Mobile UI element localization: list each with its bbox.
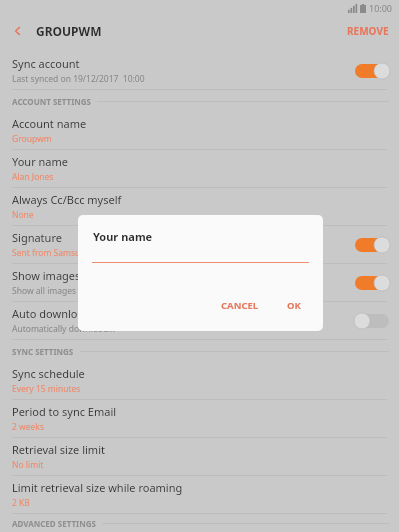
staticText: ADVANCED SETTINGS — [12, 518, 96, 529]
button[interactable]: Toggle — [355, 312, 389, 330]
staticText: Your name — [12, 154, 68, 169]
staticText: Every 15 minutes — [12, 383, 81, 395]
staticText: 10:00 — [369, 2, 393, 14]
staticText: Your name — [93, 229, 153, 244]
staticText: Auto download attachments — [12, 306, 159, 321]
staticText: Sync schedule — [12, 366, 85, 381]
staticText: Sent from Samsung Tablet — [12, 247, 118, 259]
button[interactable]: REMOVE — [337, 18, 399, 44]
button[interactable]: Period to sync Email — [0, 400, 399, 438]
staticText: ACCOUNT SETTINGS — [12, 96, 91, 107]
button[interactable]: OK — [279, 294, 309, 317]
staticText: Show all images in emails — [12, 285, 114, 297]
staticText: CANCEL — [221, 299, 259, 312]
staticText: Last synced on 19/12/2017 10:00 — [12, 73, 145, 85]
button[interactable]: Toggle — [355, 62, 389, 80]
button[interactable]: CANCEL — [213, 294, 267, 317]
button[interactable]: Your name — [0, 150, 399, 188]
button[interactable]: Auto download attachments — [0, 302, 399, 340]
staticText: OK — [287, 299, 301, 312]
staticText: SYNC SETTINGS — [12, 346, 74, 357]
staticText: Show images — [12, 268, 81, 283]
staticText: Period to sync Email — [12, 404, 117, 419]
staticText: Limit retrieval size while roaming — [12, 480, 183, 495]
staticText: Groupwm — [12, 133, 52, 145]
button[interactable]: Limit retrieval size while roaming — [0, 476, 399, 514]
staticText: Sync account — [12, 56, 80, 71]
button[interactable]: Account name — [0, 112, 399, 150]
staticText: Retrieval size limit — [12, 442, 105, 457]
button[interactable]: Sync account — [0, 52, 399, 90]
button[interactable]: Show images — [0, 264, 399, 302]
button[interactable]: Back — [0, 16, 36, 46]
staticText: 2 weeks — [12, 421, 44, 433]
staticText: Always Cc/Bcc myself — [12, 192, 122, 207]
staticText: No limit — [12, 459, 44, 471]
staticText: Alan Jones — [12, 171, 54, 183]
staticText: 2 KB — [12, 497, 30, 509]
button[interactable]: Retrieval size limit — [0, 438, 399, 476]
button[interactable]: Toggle — [355, 236, 389, 254]
button[interactable]: Always Cc/Bcc myself — [0, 188, 399, 226]
staticText: Signature — [12, 230, 62, 245]
staticText: REMOVE — [347, 24, 389, 38]
staticText: None — [12, 209, 34, 221]
button[interactable]: Toggle — [355, 274, 389, 292]
staticText: Automatically download... — [12, 323, 115, 335]
button[interactable]: Signature — [0, 226, 399, 264]
staticText: GROUPWM — [36, 23, 102, 39]
staticText: Account name — [12, 116, 87, 131]
button[interactable]: Sync schedule — [0, 362, 399, 400]
